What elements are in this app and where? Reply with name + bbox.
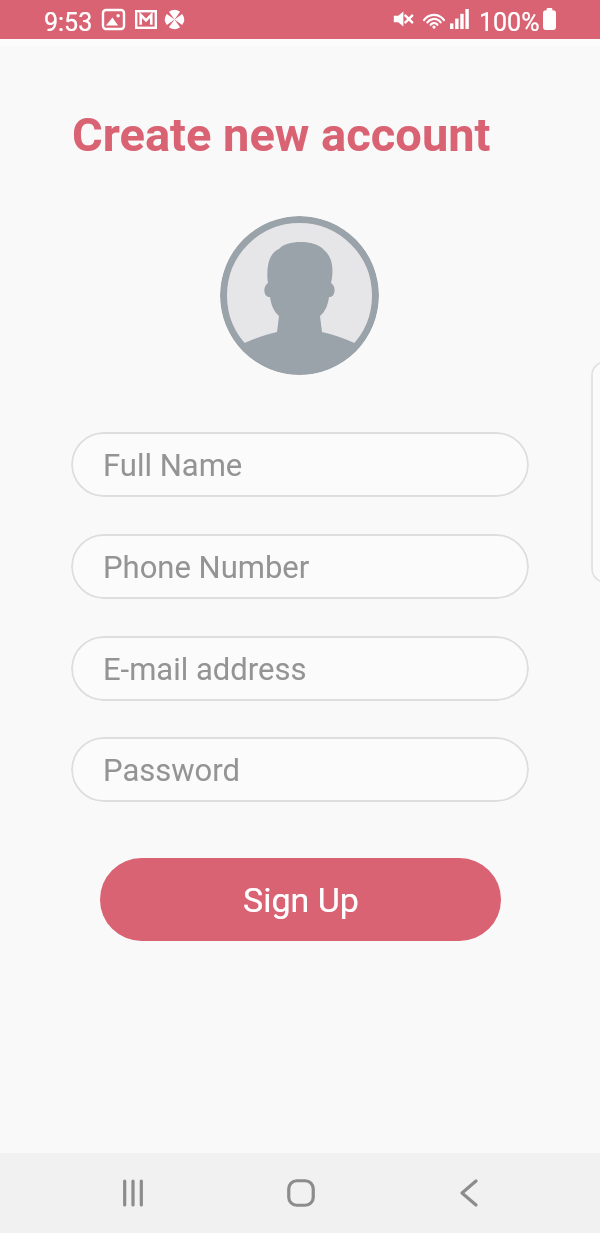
button[interactable]: Password	[71, 737, 529, 802]
staticText: E-mail address	[103, 651, 307, 687]
button[interactable]: Choose profile photo	[220, 216, 379, 375]
staticText: Full Name	[103, 447, 243, 483]
button[interactable]: Home	[277, 1169, 325, 1217]
staticText: Password	[103, 752, 240, 788]
staticText: 100%	[479, 8, 540, 37]
staticText: Phone Number	[103, 549, 310, 585]
button[interactable]: Phone Number	[71, 534, 529, 599]
button[interactable]: Recent apps	[109, 1169, 157, 1217]
button[interactable]: E-mail address	[71, 636, 529, 701]
button[interactable]: Sign Up	[100, 858, 501, 941]
staticText: 9:53	[44, 8, 93, 37]
button[interactable]: Full Name	[71, 432, 529, 497]
staticText: Sign Up	[243, 880, 359, 920]
staticText: Create new account	[72, 107, 491, 162]
button[interactable]: Back	[445, 1169, 493, 1217]
